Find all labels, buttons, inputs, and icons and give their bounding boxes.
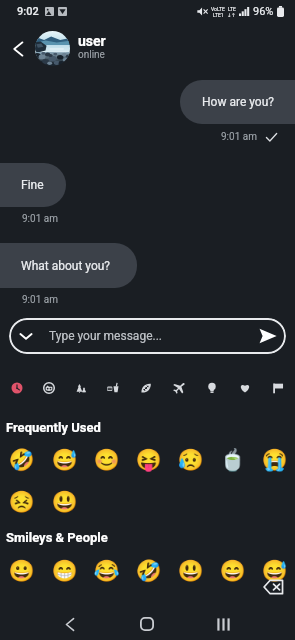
staticText: 😂 xyxy=(93,559,120,584)
button[interactable]: Fine xyxy=(0,163,66,207)
staticText: How are you? xyxy=(202,95,274,109)
button[interactable]: Animals and nature xyxy=(65,373,97,403)
button[interactable]: Send xyxy=(250,318,286,354)
staticText: Smileys & People xyxy=(6,530,108,545)
staticText: 😅 xyxy=(261,559,288,584)
button[interactable]: Home xyxy=(129,606,165,640)
button[interactable]: 🤣 xyxy=(0,443,43,477)
staticText: 🤣 xyxy=(135,559,162,584)
button[interactable]: 😭 xyxy=(253,443,295,477)
button[interactable]: 😅 xyxy=(43,443,85,477)
button[interactable]: Hide keyboard xyxy=(9,318,286,354)
button[interactable]: Activity xyxy=(129,373,162,403)
staticText: 😃 xyxy=(177,559,204,584)
staticText: Type your message... xyxy=(49,329,250,343)
button[interactable]: 🤣 xyxy=(127,554,169,588)
staticText: 9:02 xyxy=(17,5,39,18)
button[interactable]: 😣 xyxy=(0,485,43,519)
button[interactable]: Food and drink xyxy=(97,373,129,403)
button[interactable]: Recently used xyxy=(1,373,33,403)
button[interactable]: Symbols xyxy=(228,373,261,403)
button[interactable]: Objects xyxy=(195,373,228,403)
button[interactable]: Hide keyboard xyxy=(9,319,43,353)
button[interactable]: 😁 xyxy=(43,554,85,588)
staticText: LTE1 xyxy=(213,12,224,18)
staticText: user xyxy=(78,33,106,49)
button[interactable]: Backspace xyxy=(258,574,288,600)
staticText: 😃 xyxy=(51,490,78,515)
button[interactable]: Profile photo xyxy=(35,31,70,66)
staticText: 😝 xyxy=(135,448,162,473)
button[interactable]: 😅 xyxy=(253,554,295,588)
staticText: ↓↑ xyxy=(227,12,236,18)
staticText: What about you? xyxy=(21,259,111,273)
button[interactable]: 🍵 xyxy=(211,443,253,477)
button[interactable]: 😊 xyxy=(85,443,127,477)
button[interactable]: Recent apps xyxy=(205,606,241,640)
staticText: VoLTE xyxy=(211,6,225,12)
staticText: 😭 xyxy=(261,448,288,473)
staticText: 9:01 am xyxy=(22,213,58,225)
button[interactable]: 😄 xyxy=(211,554,253,588)
staticText: online xyxy=(78,49,105,61)
staticText: 9:01 am xyxy=(22,294,58,306)
staticText: 🍵 xyxy=(219,448,246,473)
button[interactable]: Travel and places xyxy=(162,373,195,403)
staticText: 😣 xyxy=(8,490,35,515)
staticText: 😅 xyxy=(51,448,78,473)
staticText: 😊 xyxy=(93,448,120,473)
staticText: LTE xyxy=(228,6,236,12)
staticText: 🤣 xyxy=(8,448,35,473)
button[interactable]: How are you? xyxy=(180,80,295,124)
staticText: Fine xyxy=(21,178,44,192)
button[interactable]: 😀 xyxy=(0,554,43,588)
staticText: 😥 xyxy=(177,448,204,473)
staticText: 😀 xyxy=(8,559,35,584)
button[interactable]: 😃 xyxy=(169,554,211,588)
staticText: 9:01 am xyxy=(221,131,257,143)
button[interactable]: Smileys and people xyxy=(33,373,65,403)
staticText: 😄 xyxy=(219,559,246,584)
button[interactable]: 😝 xyxy=(127,443,169,477)
staticText: 😁 xyxy=(51,559,78,584)
button[interactable]: Flags xyxy=(261,373,294,403)
button[interactable]: Back xyxy=(51,606,87,640)
staticText: Frequently Used xyxy=(6,420,101,435)
button[interactable]: Back xyxy=(4,34,33,63)
button[interactable]: 😥 xyxy=(169,443,211,477)
button[interactable]: 😂 xyxy=(85,554,127,588)
button[interactable]: 😃 xyxy=(43,485,85,519)
button[interactable]: What about you? xyxy=(0,243,137,288)
staticText: 96% xyxy=(253,5,274,18)
